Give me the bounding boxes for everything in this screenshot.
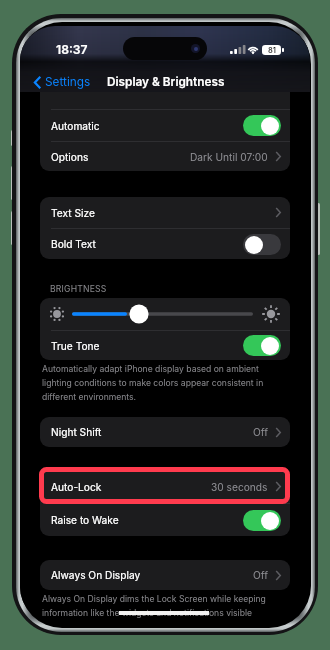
staticText: Display & Brightness — [107, 75, 225, 89]
staticText: BRIGHTNESS — [50, 284, 107, 294]
staticText: Off — [253, 569, 268, 581]
button[interactable]: Automatic — [40, 110, 290, 141]
button[interactable]: True Tone — [40, 331, 290, 360]
button[interactable]: Auto-Lock — [40, 470, 290, 503]
button[interactable]: Options — [40, 142, 290, 171]
staticText: Text Size — [51, 207, 95, 219]
staticText: Automatic — [51, 120, 100, 132]
staticText: True Tone — [51, 340, 100, 352]
staticText: 30 seconds — [211, 481, 268, 493]
button[interactable]: Switch on — [243, 510, 281, 531]
staticText: Dark Until 07:00 — [190, 151, 268, 163]
button[interactable]: Bold Text — [40, 229, 290, 259]
staticText: Options — [51, 151, 89, 163]
staticText: Night Shift — [51, 426, 102, 438]
button[interactable]: Brightness slider — [40, 298, 290, 330]
staticText: Automatically adapt iPhone display based… — [42, 364, 264, 402]
staticText: Always On Display — [51, 569, 141, 581]
button[interactable]: Always On Display — [40, 560, 290, 590]
button[interactable]: Switch off — [243, 234, 281, 255]
staticText: Off — [253, 426, 268, 438]
staticText: Always On Display dims the Lock Screen w… — [42, 594, 270, 618]
staticText: Bold Text — [51, 238, 96, 250]
staticText: Auto-Lock — [51, 481, 102, 493]
staticText: Settings — [45, 75, 91, 89]
staticText: 81 — [268, 46, 276, 55]
button[interactable]: Settings — [33, 75, 92, 89]
button[interactable]: Switch on — [243, 335, 281, 356]
staticText: 18:37 — [56, 42, 88, 57]
button[interactable]: Night Shift — [40, 417, 290, 447]
button[interactable]: Switch on — [243, 115, 281, 136]
button[interactable]: Text Size — [40, 197, 290, 228]
staticText: Raise to Wake — [51, 514, 119, 526]
button[interactable]: Raise to Wake — [40, 504, 290, 536]
